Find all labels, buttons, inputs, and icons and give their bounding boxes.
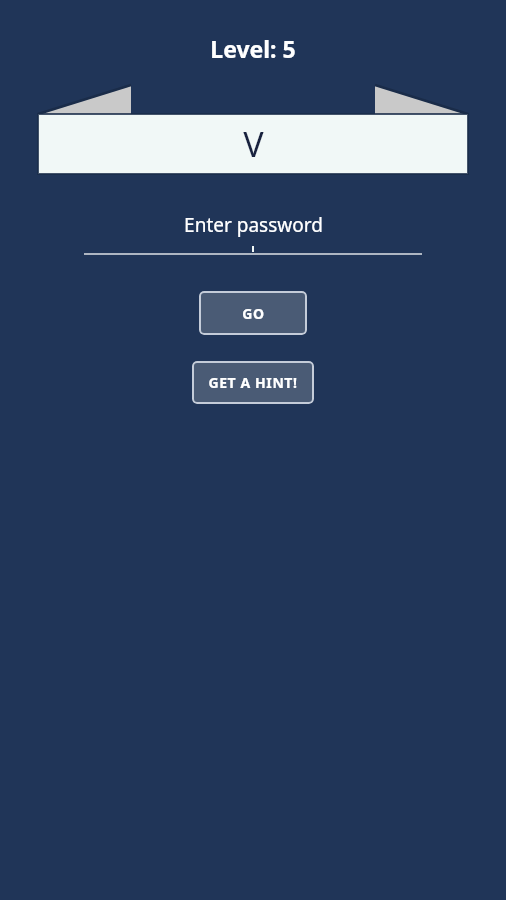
staticText: Level: 5 <box>210 33 296 64</box>
staticText: Enter password <box>184 212 323 238</box>
staticText: V <box>243 121 264 167</box>
button[interactable]: GET A HINT! <box>192 361 314 404</box>
staticText: GO <box>242 304 265 323</box>
button[interactable]: Enter password <box>84 212 422 255</box>
button[interactable]: GO <box>199 291 307 335</box>
staticText: GET A HINT! <box>208 373 298 392</box>
